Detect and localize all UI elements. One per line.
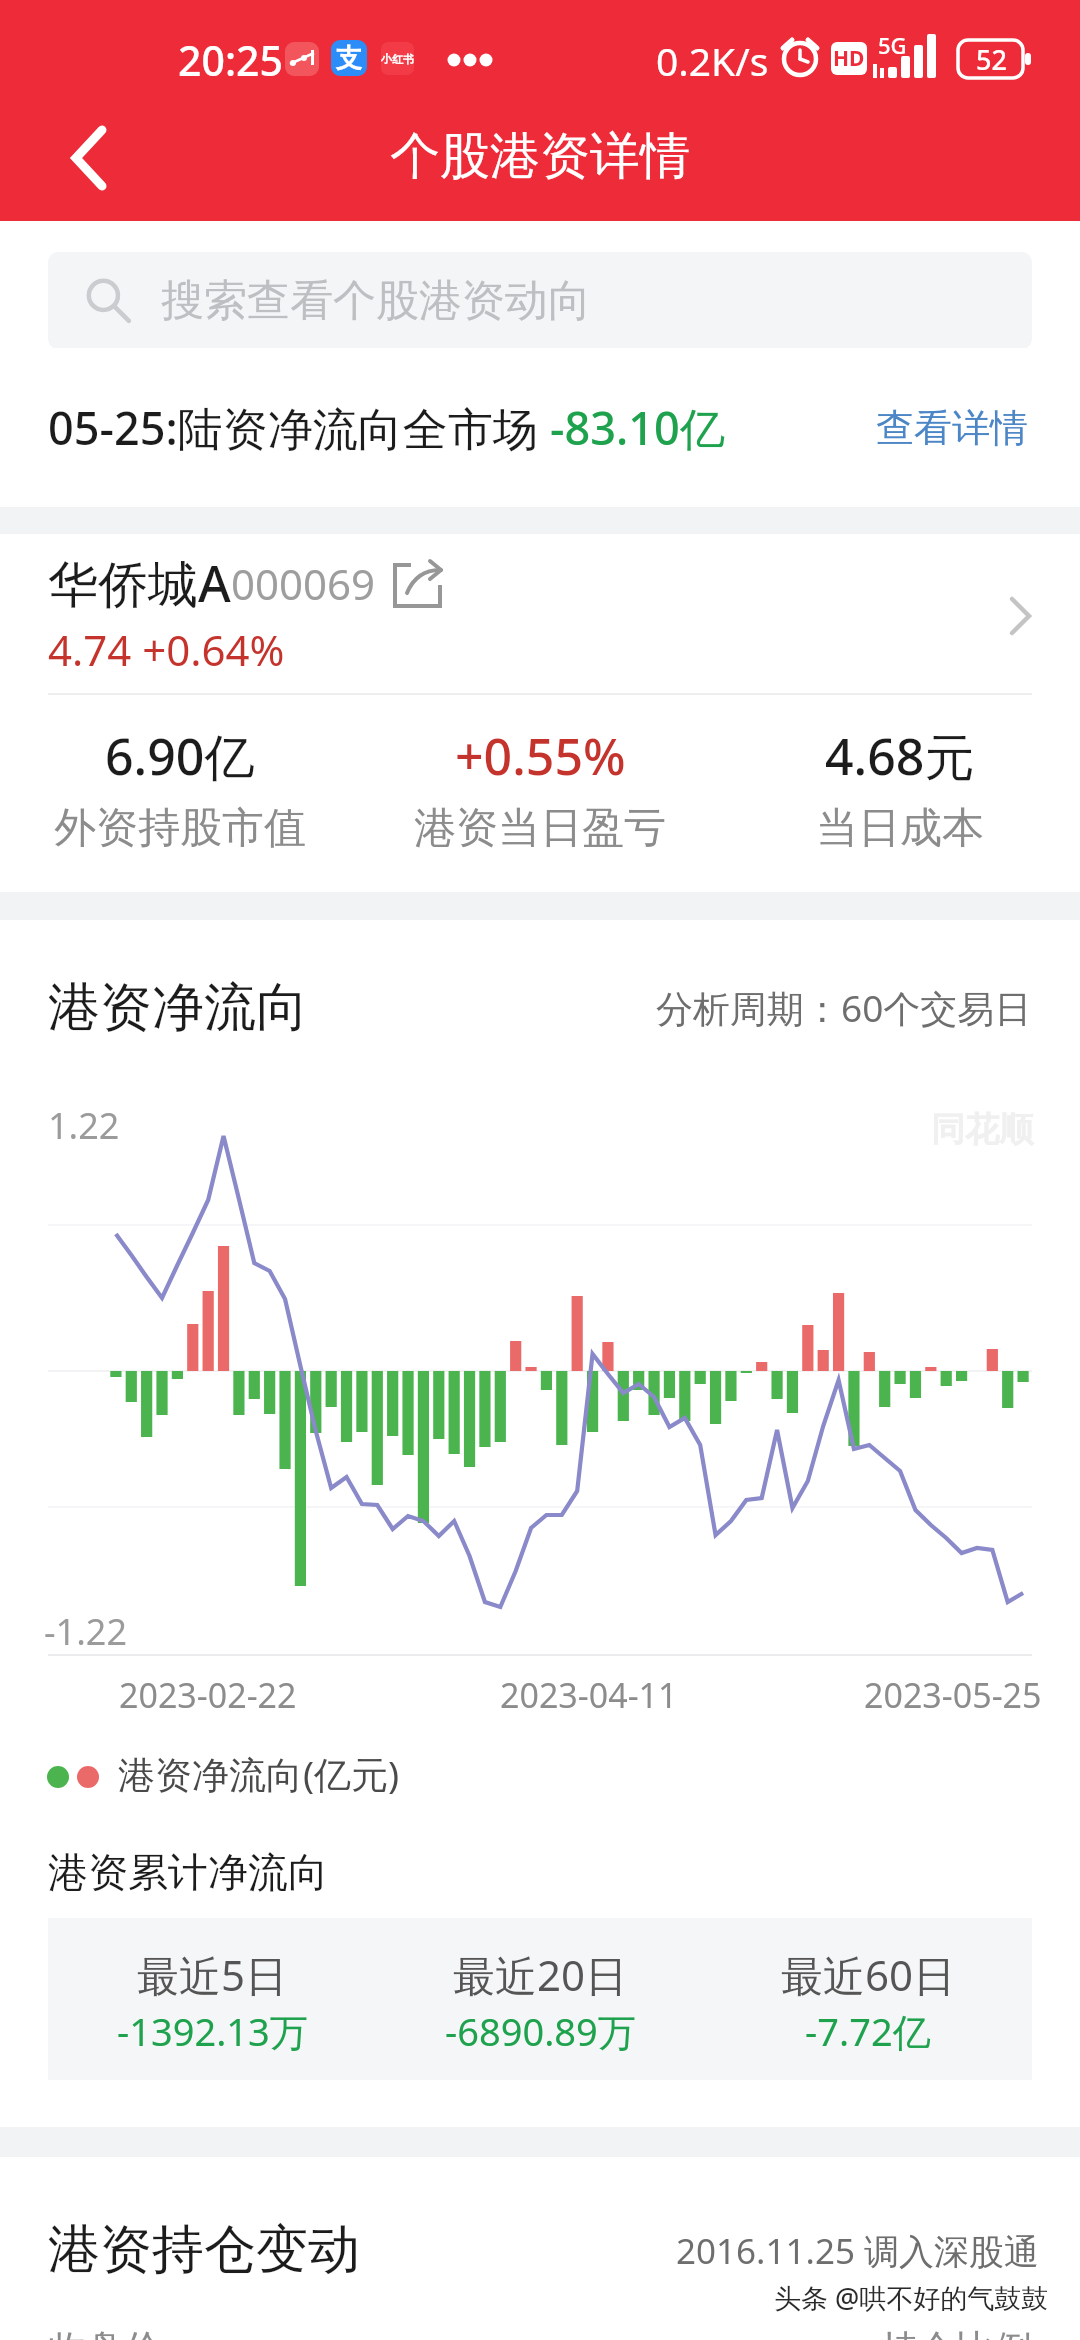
button[interactable]: Back — [0, 100, 160, 221]
staticText: 持仓比例 — [880, 2325, 1032, 2340]
staticText: 小红书 — [381, 52, 414, 66]
staticText: 分析周期：60个交易日 — [656, 982, 1032, 1033]
staticText: 港资持仓变动 — [48, 2217, 360, 2283]
staticText: 1.22 — [48, 1101, 120, 1150]
staticText: 个股港资详情 — [390, 125, 690, 188]
staticText: 最近5日 — [137, 1946, 288, 2003]
staticText: HD — [833, 44, 865, 73]
staticText: 查看详情 — [876, 404, 1028, 452]
staticText: 6.90亿 — [105, 722, 255, 790]
staticText: 港资累计净流向 — [48, 1847, 328, 1897]
staticText: 2016.11.25 调入深股通 — [676, 2227, 1040, 2275]
staticText: 头条 @哄不好的气鼓鼓 — [774, 2279, 1049, 2316]
staticText: -1.22 — [44, 1607, 128, 1656]
staticText: 支 — [336, 42, 362, 75]
staticText: 0.2K/s — [656, 34, 769, 87]
staticText: 港资净流向 — [48, 975, 308, 1041]
staticText: 05-25:陆资净流向全市场 — [48, 397, 550, 458]
staticText: -7.72亿 — [805, 2005, 931, 2057]
staticText: +0.55% — [455, 722, 626, 790]
staticText: -1392.13万 — [117, 2005, 308, 2057]
staticText: 最近20日 — [453, 1946, 628, 2003]
staticText: 5G — [878, 30, 907, 60]
staticText: -83.10亿 — [550, 397, 725, 458]
staticText: 最近60日 — [781, 1946, 956, 2003]
staticText: 华侨城A — [48, 549, 231, 617]
staticText: 52 — [976, 41, 1007, 78]
staticText: 港资净流向(亿元) — [118, 1748, 400, 1799]
button[interactable]: 搜索查看个股港资动向 — [48, 252, 1032, 349]
staticText: 4.68元 — [825, 722, 975, 790]
button[interactable]: 查看详情 — [872, 400, 1032, 456]
staticText: 收盘价 — [48, 2325, 162, 2340]
staticText: 搜索查看个股港资动向 — [161, 274, 591, 328]
staticText: 20:25 — [178, 32, 283, 88]
staticText: -6890.89万 — [445, 2005, 636, 2057]
staticText: 港资当日盈亏 — [414, 802, 666, 855]
staticText: 000069 — [231, 555, 376, 612]
staticText: 同花顺 — [931, 1108, 1033, 1151]
staticText: 2023-05-25 — [864, 1672, 1042, 1718]
staticText: 当日成本 — [816, 802, 984, 855]
staticText: 4.74 +0.64% — [48, 621, 285, 678]
staticText: 2023-02-22 — [119, 1672, 297, 1718]
button[interactable]: 华侨城A — [0, 534, 1080, 693]
staticText: 外资持股市值 — [54, 802, 306, 855]
staticText: 2023-04-11 — [500, 1672, 678, 1718]
